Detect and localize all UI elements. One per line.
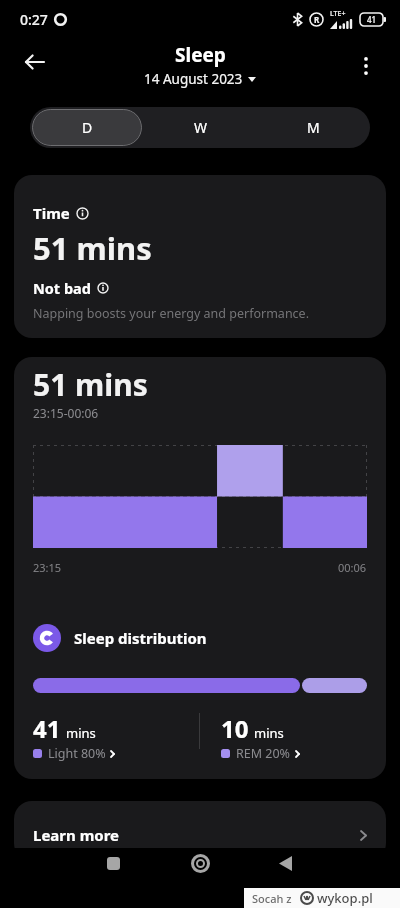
button[interactable] [186, 849, 214, 877]
staticText: 23:15-00:06 [33, 405, 99, 421]
staticText: 41 [33, 712, 61, 745]
staticText: 14 August 2023 [144, 70, 243, 88]
staticText: W [194, 118, 208, 137]
button[interactable]: Learn more [14, 801, 386, 861]
staticText: Not bad [33, 278, 91, 298]
button[interactable]: W [144, 107, 257, 148]
staticText: Sleep distribution [74, 628, 207, 648]
staticText: REM 20% [236, 745, 291, 762]
button[interactable] [271, 849, 299, 877]
staticText: Sleep [175, 42, 226, 68]
staticText: mins [66, 724, 96, 742]
staticText: 23:15 [33, 560, 62, 575]
staticText: Socah z [252, 891, 292, 906]
staticText: 41 [367, 14, 377, 25]
staticText: mins [254, 724, 284, 742]
button[interactable] [99, 849, 127, 877]
button[interactable]: M [257, 107, 370, 148]
staticText: R [314, 14, 320, 25]
button[interactable]: 10 [221, 712, 367, 762]
button[interactable] [350, 50, 382, 82]
staticText: Time [33, 203, 70, 223]
button[interactable]: D [32, 109, 142, 146]
staticText: wykop.pl [317, 889, 373, 907]
staticText: D [82, 118, 93, 137]
staticText: 51 mins [33, 227, 152, 269]
staticText: Learn more [33, 825, 120, 845]
staticText: LTE+ [330, 9, 346, 19]
staticText: 10 [221, 712, 249, 745]
staticText: 51 mins [33, 364, 148, 405]
button[interactable]: 41 [33, 712, 199, 762]
staticText: Napping boosts your energy and performan… [33, 305, 310, 322]
staticText: Light 80% [48, 745, 106, 762]
staticText: 0:27 [20, 10, 48, 29]
button[interactable] [15, 42, 55, 82]
staticText: 00:06 [338, 560, 367, 575]
button[interactable]: 14 August 2023 [144, 70, 256, 88]
staticText: M [307, 118, 320, 137]
